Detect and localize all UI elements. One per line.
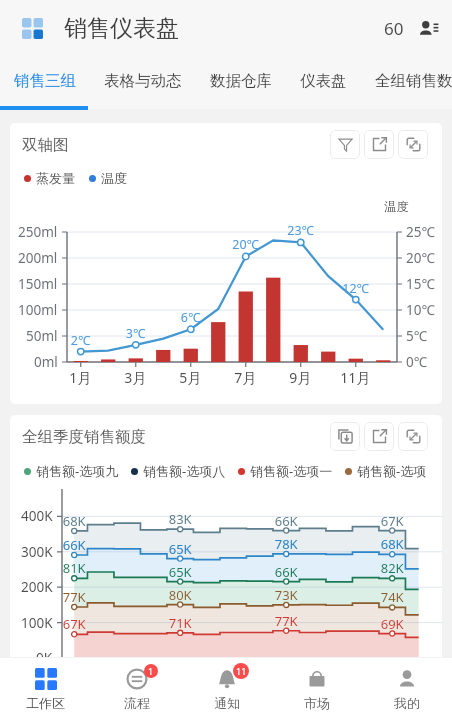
- staticText: 蒸发量: [36, 170, 75, 186]
- staticText: 表格与动态: [104, 71, 182, 91]
- staticText: 销售额-选项: [357, 462, 427, 480]
- staticText: 销售额-选项八: [143, 462, 226, 480]
- staticText: 全组季度销售额度: [22, 427, 146, 447]
- staticText: 仪表盘: [300, 71, 347, 91]
- button[interactable]: 我的: [362, 658, 452, 720]
- button[interactable]: Fullscreen: [398, 130, 428, 159]
- button[interactable]: 销售三组: [0, 56, 90, 105]
- staticText: 销售额-选项一: [250, 462, 333, 480]
- button[interactable]: 仪表盘: [286, 56, 361, 105]
- staticText: 我的: [394, 695, 420, 711]
- staticText: 60: [384, 17, 404, 40]
- button[interactable]: Export: [364, 130, 394, 159]
- staticText: 通知: [214, 695, 240, 711]
- staticText: 1: [148, 665, 154, 677]
- button[interactable]: Save: [330, 422, 360, 451]
- staticText: 市场: [304, 695, 330, 711]
- button[interactable]: Filter: [330, 130, 360, 159]
- staticText: 双轴图: [22, 135, 69, 155]
- button[interactable]: 1: [91, 658, 182, 720]
- button[interactable]: 数据仓库: [196, 56, 286, 105]
- button[interactable]: 工作区: [0, 658, 91, 720]
- staticText: 流程: [124, 695, 150, 711]
- staticText: 工作区: [26, 695, 65, 711]
- staticText: 销售三组: [14, 71, 76, 91]
- staticText: 温度: [101, 170, 127, 186]
- button[interactable]: Apps: [12, 8, 52, 48]
- staticText: 销售仪表盘: [64, 14, 179, 43]
- button[interactable]: 市场: [272, 658, 362, 720]
- staticText: 11: [236, 665, 247, 677]
- button[interactable]: Fullscreen: [398, 422, 428, 451]
- button[interactable]: 11: [182, 658, 272, 720]
- button[interactable]: Export: [364, 422, 394, 451]
- staticText: 数据仓库: [210, 71, 272, 91]
- button[interactable]: 表格与动态: [90, 56, 196, 105]
- button[interactable]: 全组销售数据: [361, 56, 452, 105]
- staticText: 销售额-选项九: [36, 462, 119, 480]
- button[interactable]: Members: [409, 9, 447, 47]
- staticText: 全组销售数据: [375, 71, 452, 91]
